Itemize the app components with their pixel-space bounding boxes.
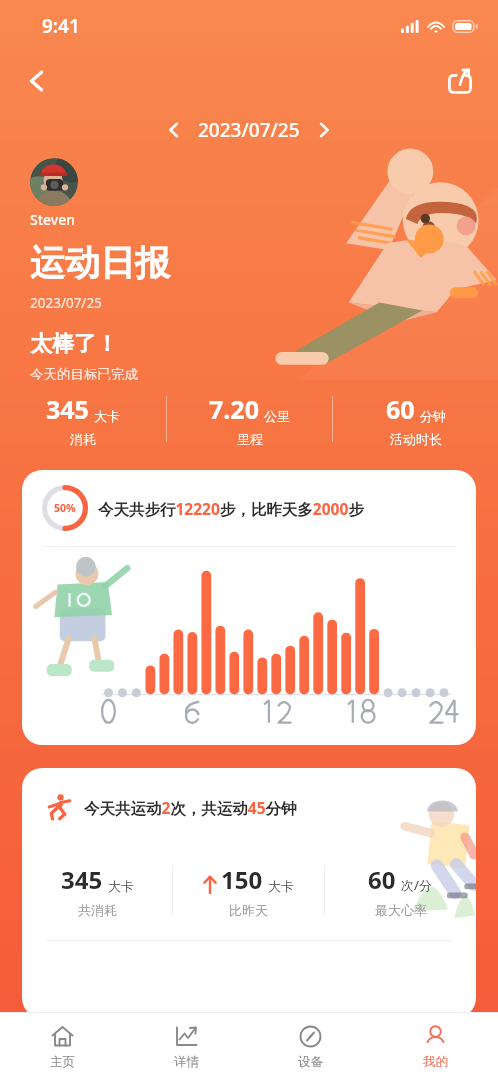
staticText: 里程 bbox=[237, 431, 263, 447]
staticText: 345 bbox=[61, 863, 103, 896]
staticText: 大卡 bbox=[94, 408, 120, 424]
staticText: 2023/07/25 bbox=[198, 117, 300, 143]
staticText: 消耗 bbox=[70, 431, 96, 447]
staticText: 9:41 bbox=[42, 13, 80, 39]
staticText: 分钟 bbox=[420, 408, 446, 424]
staticText: 详情 bbox=[174, 1054, 199, 1070]
button[interactable]: Back bbox=[16, 59, 60, 103]
staticText: 最大心率 bbox=[375, 902, 427, 918]
staticText: 太棒了！ bbox=[30, 330, 118, 358]
staticText: 主页 bbox=[50, 1054, 75, 1070]
staticText: 2023/07/25 bbox=[30, 294, 102, 312]
staticText: 大卡 bbox=[268, 878, 294, 894]
button[interactable]: Profile photo bbox=[30, 158, 78, 206]
staticText: Steven bbox=[30, 210, 76, 229]
button[interactable]: 我的 bbox=[373, 1013, 498, 1080]
staticText: 今天的目标已完成 bbox=[30, 366, 138, 380]
button[interactable]: 今天共运动2次，共运动45分钟 bbox=[22, 768, 476, 1018]
button[interactable]: 60 bbox=[333, 380, 498, 458]
staticText: 7.20 bbox=[209, 392, 259, 426]
staticText: 活动时长 bbox=[390, 431, 442, 447]
staticText: 设备 bbox=[298, 1054, 323, 1070]
button[interactable]: 345 bbox=[0, 380, 166, 458]
staticText: 60 bbox=[368, 863, 396, 896]
staticText: 次/分 bbox=[401, 876, 433, 894]
button[interactable]: Next day bbox=[306, 112, 342, 148]
staticText: 345 bbox=[46, 392, 89, 426]
button[interactable]: 7.20 bbox=[167, 380, 332, 458]
staticText: 大卡 bbox=[108, 878, 134, 894]
button[interactable]: 150 bbox=[173, 863, 324, 918]
staticText: 运动日报 bbox=[30, 241, 170, 285]
button[interactable]: Share bbox=[438, 59, 482, 103]
staticText: 共消耗 bbox=[78, 902, 117, 918]
staticText: 公里 bbox=[264, 408, 290, 424]
staticText: 50% bbox=[54, 501, 76, 515]
button[interactable]: 设备 bbox=[248, 1013, 373, 1080]
button[interactable]: 345 bbox=[22, 863, 172, 918]
button[interactable]: 主页 bbox=[0, 1013, 124, 1080]
button[interactable]: 60 bbox=[325, 863, 476, 918]
staticText: 60 bbox=[386, 392, 415, 426]
staticText: 比昨天 bbox=[229, 902, 268, 918]
staticText: 今天共步行12220步，比昨天多2000步 bbox=[98, 498, 364, 519]
button[interactable]: 50% bbox=[22, 470, 476, 745]
staticText: 150 bbox=[221, 863, 263, 896]
button[interactable]: 详情 bbox=[124, 1013, 248, 1080]
staticText: 我的 bbox=[423, 1054, 448, 1070]
button[interactable]: Previous day bbox=[156, 112, 192, 148]
staticText: 今天共运动2次，共运动45分钟 bbox=[84, 797, 297, 818]
